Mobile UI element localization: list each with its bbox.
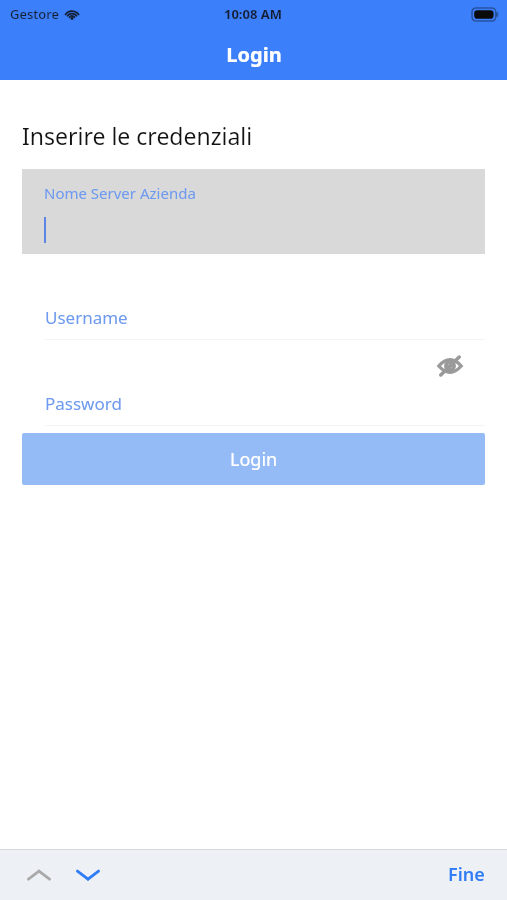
staticText: Username (45, 306, 128, 329)
staticText: Inserire le credenziali (22, 120, 253, 151)
staticText: Password (45, 392, 122, 415)
button[interactable]: Nome Server Azienda (22, 169, 485, 254)
staticText: Fine (448, 862, 485, 887)
button[interactable]: Campo successivo (67, 854, 109, 896)
button[interactable]: Mostra password (433, 349, 467, 383)
button[interactable]: Username (0, 306, 507, 340)
staticText: Gestore (10, 5, 59, 23)
staticText: Login (230, 447, 278, 472)
button[interactable]: Campo precedente (18, 854, 60, 896)
staticText: 10:08 AM (224, 5, 283, 23)
staticText: Login (226, 41, 282, 68)
staticText: Nome Server Azienda (44, 183, 196, 203)
button[interactable]: Password (0, 392, 507, 426)
button[interactable]: Fine (442, 856, 491, 893)
button[interactable]: Login (22, 433, 485, 485)
